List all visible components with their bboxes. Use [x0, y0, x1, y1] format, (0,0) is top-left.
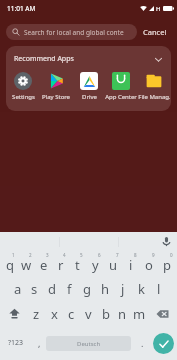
staticText: 4	[63, 252, 66, 258]
button[interactable]: ,	[32, 326, 46, 360]
button[interactable]: 9	[140, 251, 158, 276]
button[interactable]: h	[96, 276, 114, 301]
staticText: .	[141, 337, 144, 349]
staticText: Deutsch	[77, 340, 101, 348]
button[interactable]: 3	[35, 251, 52, 276]
button[interactable]: Search for local and global conte	[6, 24, 137, 40]
staticText: k	[138, 280, 145, 298]
staticText: c	[68, 305, 75, 323]
button[interactable]: Enter	[153, 333, 174, 354]
button[interactable]: d	[43, 276, 60, 301]
button[interactable]: s	[26, 276, 43, 301]
staticText: File Manag…	[138, 93, 170, 101]
staticText: 2	[29, 252, 32, 258]
staticText: f	[67, 280, 72, 298]
staticText: z	[33, 305, 40, 323]
staticText: Cancel	[143, 27, 167, 37]
staticText: i	[129, 256, 133, 274]
button[interactable]: m	[131, 301, 148, 326]
staticText: q	[6, 256, 14, 274]
button[interactable]: .	[131, 326, 153, 360]
button[interactable]: Recommend Apps	[6, 46, 171, 72]
button[interactable]: 4	[52, 251, 69, 276]
staticText: j	[121, 280, 125, 298]
staticText: 0	[170, 252, 173, 258]
staticText: 1	[12, 252, 15, 258]
staticText: g	[83, 280, 91, 298]
staticText: x	[51, 305, 58, 323]
staticText: m	[133, 305, 146, 323]
button[interactable]: 5	[69, 251, 86, 276]
staticText: a	[14, 280, 22, 298]
button[interactable]: v	[80, 301, 97, 326]
button[interactable]: 0	[158, 251, 176, 276]
button[interactable]: a	[9, 276, 26, 301]
button[interactable]: Backspace	[148, 301, 176, 326]
staticText: 5	[80, 252, 83, 258]
staticText: ,	[38, 337, 41, 349]
staticText: Drive	[82, 93, 97, 101]
staticText: 11:01 AM	[7, 4, 36, 13]
staticText: u	[109, 256, 118, 274]
button[interactable]: x	[45, 301, 63, 326]
staticText: t	[75, 256, 80, 274]
staticText: p	[163, 256, 171, 274]
button[interactable]: z	[27, 301, 45, 326]
staticText: h	[101, 280, 110, 298]
button[interactable]: Play Store	[40, 72, 72, 101]
staticText: w	[21, 256, 32, 274]
button[interactable]: g	[78, 276, 96, 301]
staticText: v	[85, 305, 92, 323]
staticText: y	[92, 256, 99, 274]
staticText: 8	[134, 252, 137, 258]
button[interactable]: ?123	[0, 326, 32, 360]
staticText: o	[145, 256, 153, 274]
button[interactable]: 7	[104, 251, 122, 276]
button[interactable]: 6	[86, 251, 104, 276]
staticText: 6	[98, 252, 101, 258]
staticText: ?123	[8, 338, 24, 348]
staticText: b	[102, 305, 110, 323]
staticText: 7	[116, 252, 119, 258]
button[interactable]: Deutsch	[46, 336, 131, 351]
button[interactable]: n	[114, 301, 131, 326]
button[interactable]: b	[97, 301, 114, 326]
staticText: Settings	[12, 93, 35, 101]
staticText: 9	[152, 252, 155, 258]
button[interactable]: 1	[1, 251, 18, 276]
button[interactable]: 2	[18, 251, 35, 276]
button[interactable]: l	[150, 276, 168, 301]
button[interactable]: 8	[122, 251, 140, 276]
staticText: d	[48, 280, 56, 298]
staticText: Recommend Apps	[14, 54, 74, 64]
staticText: s	[31, 280, 38, 298]
staticText: 3	[46, 252, 49, 258]
staticText: App Center	[105, 93, 137, 101]
staticText: r	[58, 256, 64, 274]
staticText: Play Store	[42, 93, 70, 101]
button[interactable]: f	[60, 276, 78, 301]
button[interactable]: k	[132, 276, 150, 301]
button[interactable]: Cancel	[137, 23, 173, 41]
staticText: Search for local and global conte	[24, 28, 124, 37]
button[interactable]: Shift	[1, 301, 27, 326]
staticText: l	[157, 280, 161, 298]
button[interactable]: c	[63, 301, 80, 326]
button[interactable]: App Center	[105, 72, 137, 101]
button[interactable]: j	[114, 276, 132, 301]
staticText: H	[156, 5, 161, 13]
staticText: n	[118, 305, 127, 323]
staticText: e	[40, 256, 48, 274]
button[interactable]: File Manag…	[138, 72, 170, 101]
button[interactable]: Settings	[7, 72, 39, 101]
button[interactable]: Voice input	[156, 232, 177, 251]
button[interactable]: Drive	[73, 72, 105, 101]
